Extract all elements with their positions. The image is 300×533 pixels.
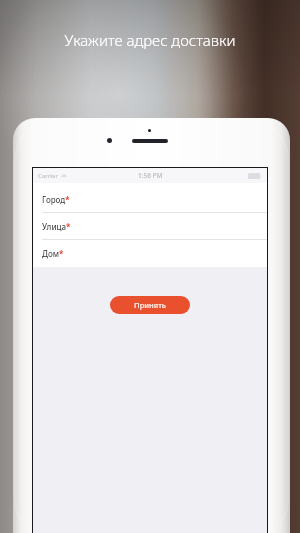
button[interactable]: Улица* xyxy=(33,213,267,240)
staticText: 1:56 PM xyxy=(138,171,163,180)
staticText: Укажите адрес доставки xyxy=(0,30,300,50)
staticText: Улица* xyxy=(42,221,71,232)
staticText: Принять xyxy=(134,300,166,310)
button[interactable]: Город* xyxy=(33,186,267,213)
staticText: Carrier xyxy=(38,172,58,180)
button[interactable]: Принять xyxy=(110,296,190,314)
staticText: Город* xyxy=(42,194,70,205)
button[interactable]: Дом* xyxy=(33,240,267,267)
staticText: Дом* xyxy=(42,248,64,259)
other: Phone screen xyxy=(33,168,267,533)
